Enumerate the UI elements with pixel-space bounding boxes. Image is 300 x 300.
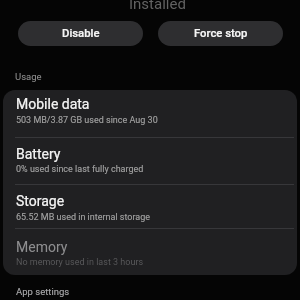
staticText: Battery [16,146,61,162]
button[interactable]: Battery [3,138,297,184]
staticText: Storage [16,193,65,209]
staticText: No memory used in last 3 hours [16,257,144,268]
staticText: 503 MB/3.87 GB used since Aug 30 [16,115,158,126]
staticText: Force stop [194,27,248,40]
button[interactable]: Force stop [158,21,283,46]
staticText: Mobile data [16,96,90,112]
staticText: Memory [16,239,68,255]
staticText: Installed [129,0,186,13]
staticText: 0% used since last fully charged [16,164,144,175]
staticText: 65.52 MB used in internal storage [16,212,151,223]
button[interactable]: Mobile data [3,90,297,137]
staticText: App settings [16,286,70,297]
button[interactable]: Disable [18,21,143,46]
staticText: Usage [15,71,42,82]
staticText: Disable [62,27,100,40]
button[interactable]: Memory [3,229,297,275]
button[interactable]: Storage [3,185,297,228]
